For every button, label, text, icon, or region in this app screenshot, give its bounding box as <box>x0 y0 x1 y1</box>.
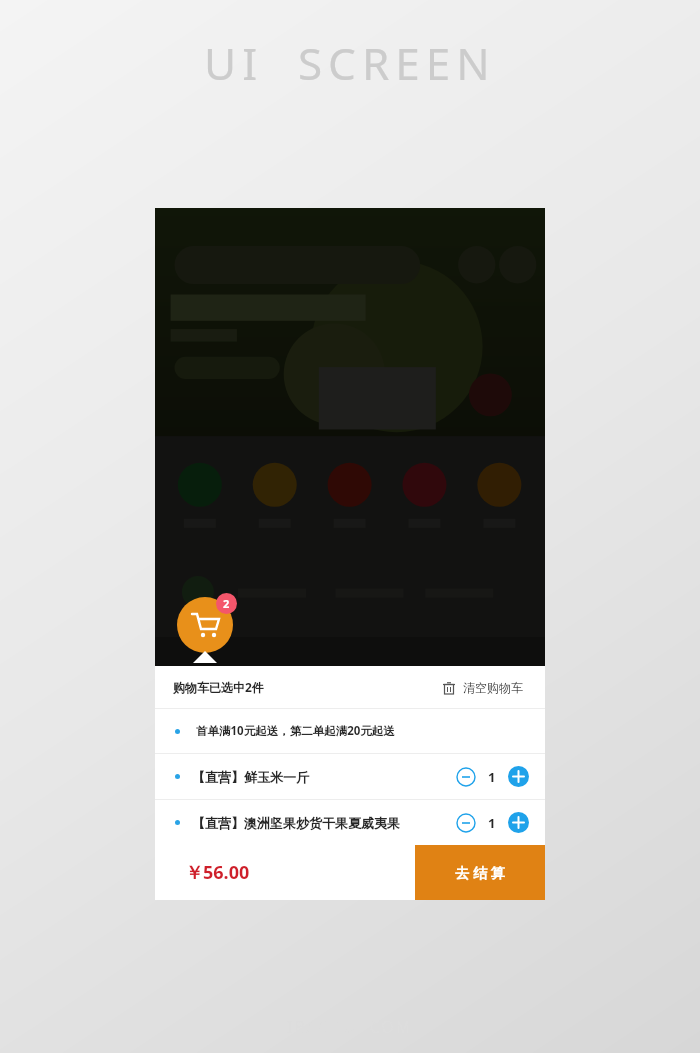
button[interactable]: 购物车 <box>177 597 233 653</box>
staticText: 购物车已选中2件 <box>173 679 264 695</box>
staticText: 1 <box>488 814 496 832</box>
button[interactable]: 减少 <box>456 813 476 833</box>
staticText: ￥56.00 <box>185 860 250 885</box>
button[interactable]: 清空购物车 <box>438 676 527 699</box>
staticText: 【直营】澳洲坚果炒货干果夏威夷果 <box>192 815 400 831</box>
button[interactable]: 增加 <box>508 812 529 833</box>
staticText: 【直营】鲜玉米一斤 <box>192 769 309 785</box>
button[interactable]: 减少 <box>456 767 476 787</box>
button[interactable]: 【直营】澳洲坚果炒货干果夏威夷果 <box>155 800 545 845</box>
button[interactable]: 首单满10元起送，第二单起满20元起送 <box>155 709 545 753</box>
button[interactable]: 去 结 算 <box>415 845 545 900</box>
button[interactable]: 【直营】鲜玉米一斤 <box>155 754 545 799</box>
staticText: 清空购物车 <box>463 680 523 695</box>
button[interactable]: 增加 <box>508 766 529 787</box>
staticText: 去 结 算 <box>455 863 505 882</box>
staticText: 1 <box>488 768 496 786</box>
button[interactable]: ￥56.00 <box>155 845 415 900</box>
staticText: UI SCREEN <box>204 33 496 93</box>
staticText: 2 <box>223 596 230 611</box>
staticText: 首单满10元起送，第二单起满20元起送 <box>196 723 395 739</box>
